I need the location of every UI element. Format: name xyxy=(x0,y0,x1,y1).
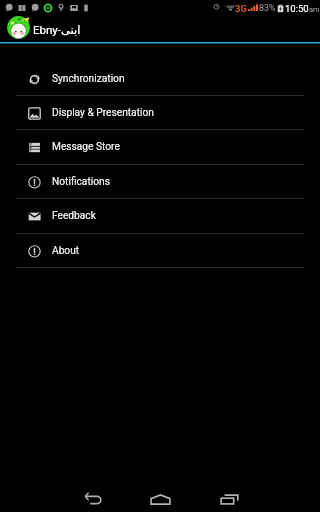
staticText: Display & Presentation xyxy=(52,107,154,119)
button[interactable]: Display & Presentation xyxy=(0,96,320,130)
staticText: Synchronization xyxy=(52,73,125,85)
button[interactable]: Synchronization xyxy=(0,62,320,96)
staticText: Message Store xyxy=(52,141,120,153)
button[interactable]: Feedback xyxy=(0,199,320,233)
staticText: Ebny-ابنى xyxy=(33,23,81,36)
staticText: Feedback xyxy=(52,210,96,222)
button[interactable]: Back xyxy=(59,478,127,512)
staticText: am xyxy=(309,5,320,14)
staticText: About xyxy=(52,245,80,257)
staticText: 83% xyxy=(259,3,276,14)
button[interactable]: About xyxy=(0,234,320,268)
button[interactable]: Notifications xyxy=(0,165,320,199)
staticText: 3G xyxy=(235,3,247,14)
button[interactable]: Ebny-ابنى xyxy=(0,16,320,42)
staticText: Notifications xyxy=(52,176,110,188)
staticText: 10:50 xyxy=(285,3,309,14)
button[interactable]: Recent apps xyxy=(195,478,263,512)
button[interactable]: Message Store xyxy=(0,130,320,164)
button[interactable]: Home xyxy=(126,478,194,512)
